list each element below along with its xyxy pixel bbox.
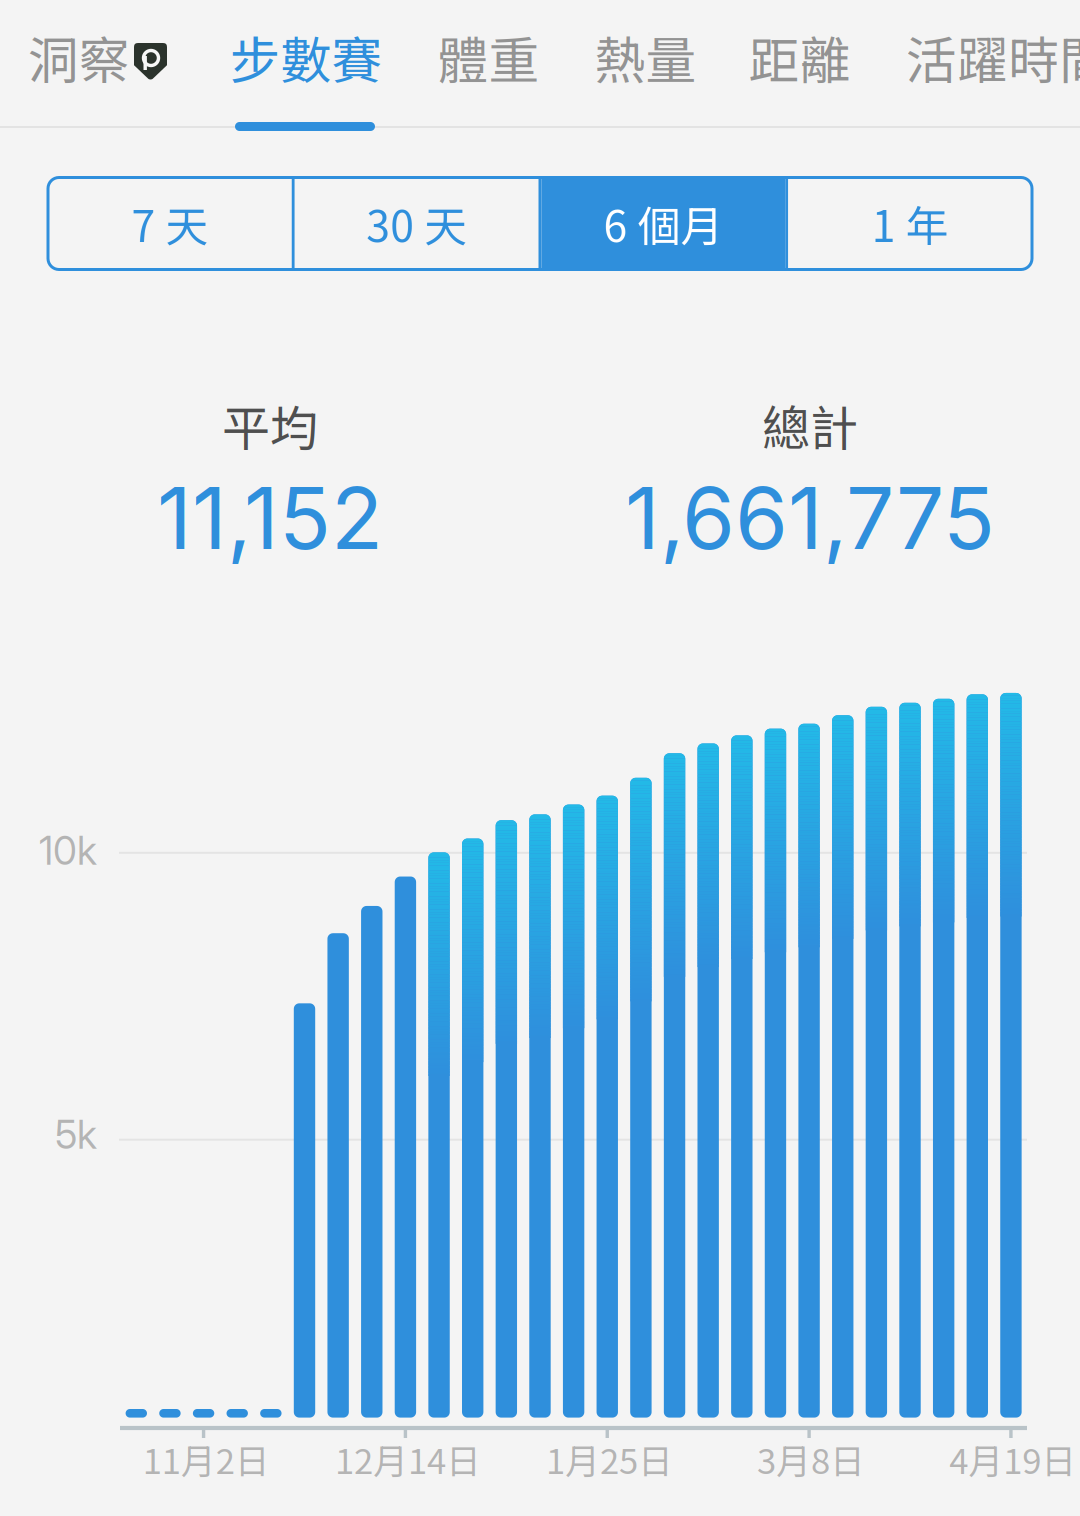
staticText: 1 年 — [872, 193, 949, 254]
staticText: 1,661,775 — [625, 466, 995, 570]
button[interactable]: 30 天 — [295, 177, 539, 269]
staticText: 活躍時間 — [906, 20, 1080, 94]
staticText: 12月14日 — [335, 1434, 481, 1484]
button[interactable]: 活躍時間 — [883, 0, 1080, 126]
staticText: 11月2日 — [143, 1434, 270, 1484]
staticText: 平均 — [222, 390, 318, 460]
staticText: 洞察 — [28, 20, 130, 94]
staticText: 6 個月 — [603, 193, 723, 254]
button[interactable]: 距離 — [722, 0, 877, 126]
button[interactable]: 6 個月 — [541, 177, 785, 269]
staticText: 總計 — [762, 390, 858, 460]
staticText: 1月25日 — [546, 1434, 673, 1484]
button[interactable]: 熱量 — [568, 0, 723, 126]
staticText: 步數賽 — [229, 20, 382, 94]
staticText: 3月8日 — [757, 1434, 865, 1484]
staticText: 距離 — [748, 20, 850, 94]
staticText: 11,152 — [157, 466, 383, 570]
staticText: 熱量 — [594, 20, 696, 94]
button[interactable]: 洞察 — [12, 0, 184, 126]
button[interactable]: 步數賽 — [205, 0, 405, 126]
button[interactable]: 體重 — [411, 0, 566, 126]
staticText: 4月19日 — [949, 1434, 1076, 1484]
staticText: 體重 — [437, 20, 539, 94]
staticText: 7 天 — [131, 193, 208, 254]
staticText: 10k — [39, 827, 97, 874]
staticText: 30 天 — [366, 193, 467, 254]
staticText: 5k — [55, 1111, 97, 1158]
button[interactable]: 7 天 — [48, 177, 292, 269]
button[interactable]: 1 年 — [788, 177, 1032, 269]
